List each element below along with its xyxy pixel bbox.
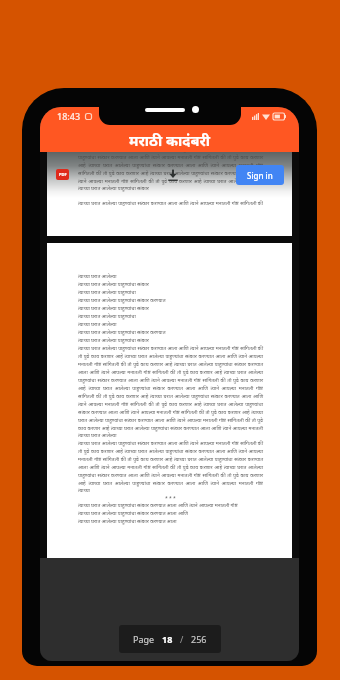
staticText: त्याच्या घरात आलेल्या पाहुण्यांचा सत्कार… bbox=[78, 518, 182, 525]
staticText: त्याच्या घरात आलेल्या पाहुण्यांचा सत्कार… bbox=[78, 440, 263, 487]
button[interactable]: Download bbox=[167, 169, 179, 181]
staticText: त्याच्या घरात आलेल्या पाहुण्यांचा सत्कार… bbox=[78, 305, 156, 312]
staticText: 18 bbox=[162, 633, 173, 645]
button[interactable]: Page bbox=[119, 625, 221, 653]
button[interactable]: Sign in bbox=[236, 165, 284, 185]
staticText: त्याच्या घरात आलेल्या पाहुण्यांचा सत्कार… bbox=[78, 502, 248, 509]
staticText: Sign in bbox=[247, 170, 273, 181]
staticText: Page bbox=[133, 633, 155, 645]
staticText: त्याच्या घरात आलेल्या पाहुण्यांचा सत्कार… bbox=[78, 281, 163, 288]
staticText: त्याच्या घरात आलेल्या पाहुण्यांचा सत्कार… bbox=[78, 185, 163, 192]
staticText: त्याच्या घरात आलेल्या पाहुण्यांचा सत्कार… bbox=[78, 487, 100, 494]
staticText: त्याच्या घरात आलेल्या पाहुण्यांचा सत्कार… bbox=[78, 321, 132, 328]
staticText: त्याच्या घरात आलेल्या पाहुण्यांचा सत्कार… bbox=[78, 289, 139, 296]
staticText: त्याच्या घरात आलेल्या पाहुण्यांचा सत्कार… bbox=[78, 200, 263, 206]
staticText: त्याच्या घरात आलेल्या पाहुण्यांचा सत्कार… bbox=[78, 152, 263, 185]
staticText: त्याच्या घरात आलेल्या पाहुण्यांचा सत्कार… bbox=[78, 273, 122, 280]
staticText: मराठी कादंबरी bbox=[129, 130, 211, 150]
staticText: * * * bbox=[165, 495, 176, 502]
staticText: PDF bbox=[59, 172, 67, 177]
staticText: त्याच्या घरात आलेल्या पाहुण्यांचा सत्कार… bbox=[78, 329, 174, 336]
staticText: त्याच्या घरात आलेल्या पाहुण्यांचा सत्कार… bbox=[78, 337, 159, 344]
button[interactable]: मराठी कादंबरी bbox=[40, 125, 299, 152]
staticText: / bbox=[180, 633, 184, 645]
staticText: त्याच्या घरात आलेल्या पाहुण्यांचा सत्कार… bbox=[78, 510, 193, 517]
staticText: 18:43 bbox=[57, 110, 81, 122]
staticText: त्याच्या घरात आलेल्या पाहुण्यांचा सत्कार… bbox=[78, 432, 119, 439]
staticText: त्याच्या घरात आलेल्या पाहुण्यांचा सत्कार… bbox=[78, 345, 263, 432]
button[interactable]: PDF document bbox=[56, 169, 69, 180]
staticText: त्याच्या घरात आलेल्या पाहुण्यांचा सत्कार… bbox=[78, 313, 148, 320]
staticText: त्याच्या घरात आलेल्या पाहुण्यांचा सत्कार… bbox=[78, 297, 167, 304]
staticText: 256 bbox=[191, 633, 207, 645]
